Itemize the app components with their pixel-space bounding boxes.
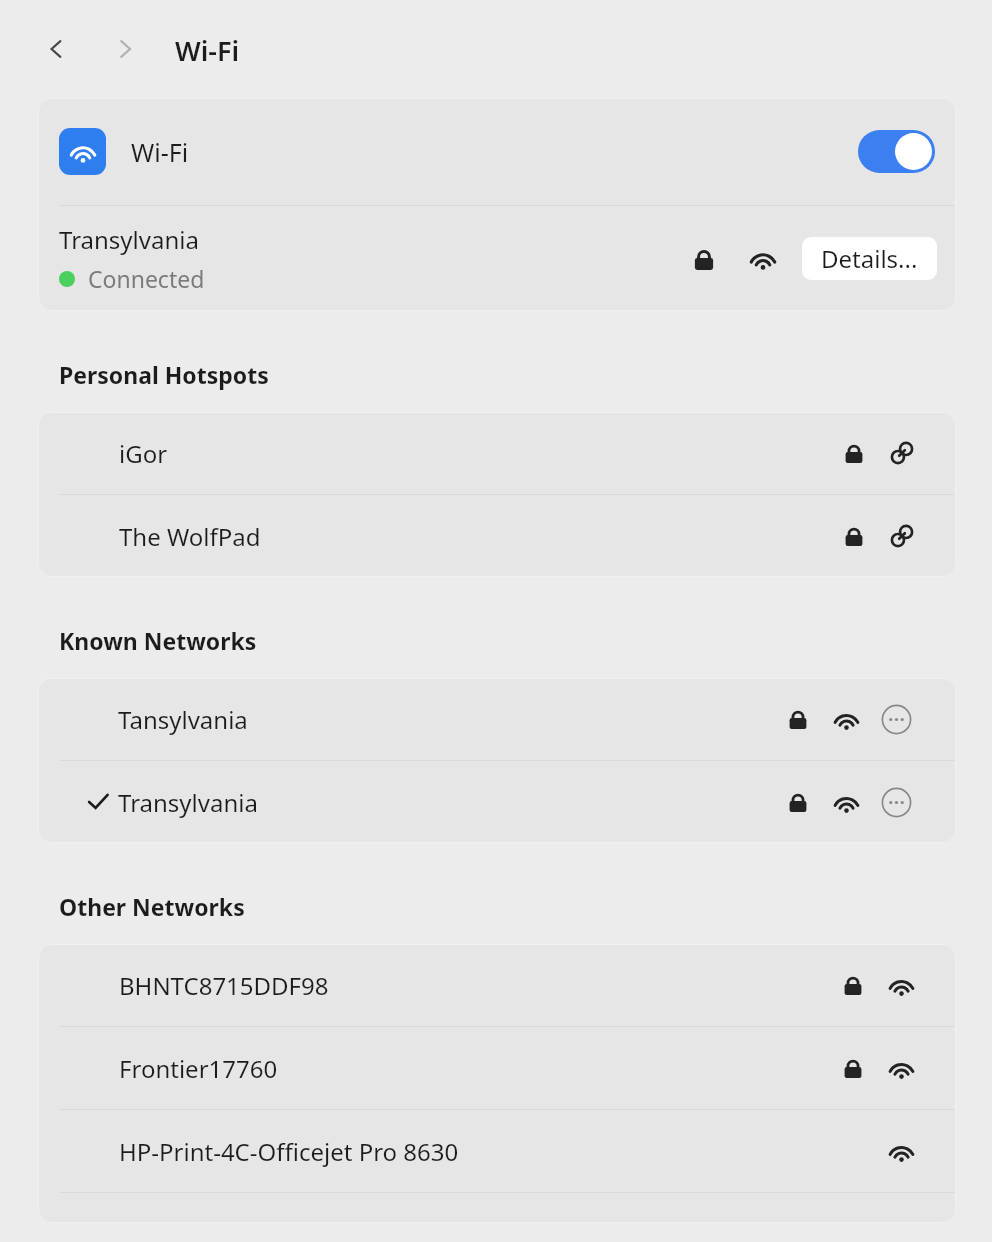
staticText: Transylvania [59, 223, 199, 256]
button[interactable]: Tansylvania [38, 678, 956, 760]
button[interactable]: HP-Print-4C-Officejet Pro 8630 [38, 1110, 956, 1192]
button[interactable]: More options [881, 787, 912, 818]
button[interactable]: The WolfPad [38, 495, 956, 577]
staticText: Connected [88, 263, 205, 294]
button[interactable]: Wi-Fi on [858, 130, 935, 173]
button[interactable]: Details... [802, 237, 937, 280]
button[interactable]: Transylvania [38, 206, 956, 311]
staticText: iGor [119, 437, 168, 470]
button[interactable]: Secured [687, 242, 721, 276]
button[interactable]: iGor [38, 412, 956, 494]
staticText: Tansylvania [118, 703, 248, 736]
staticText: Frontier17760 [119, 1052, 278, 1085]
staticText: The WolfPad [119, 520, 261, 553]
button[interactable]: Transylvania [38, 761, 956, 843]
staticText: Personal Hotspots [59, 359, 269, 390]
staticText: Transylvania [118, 786, 258, 819]
staticText: HP-Print-4C-Officejet Pro 8630 [119, 1135, 459, 1168]
button[interactable]: BHNTC8715DDF98 [38, 944, 956, 1026]
staticText: Details... [821, 242, 918, 275]
staticText: Wi-Fi [175, 32, 240, 69]
button[interactable]: Back [34, 28, 76, 70]
staticText: Wi-Fi [131, 135, 189, 169]
button[interactable]: Wi-Fi [38, 98, 956, 205]
button[interactable]: Frontier17760 [38, 1027, 956, 1109]
button[interactable]: Forward [105, 28, 147, 70]
staticText: Known Networks [59, 625, 257, 656]
staticText: Other Networks [59, 891, 245, 922]
staticText: BHNTC8715DDF98 [119, 969, 329, 1002]
button[interactable]: Signal strength [746, 242, 780, 276]
button[interactable]: More options [881, 704, 912, 735]
